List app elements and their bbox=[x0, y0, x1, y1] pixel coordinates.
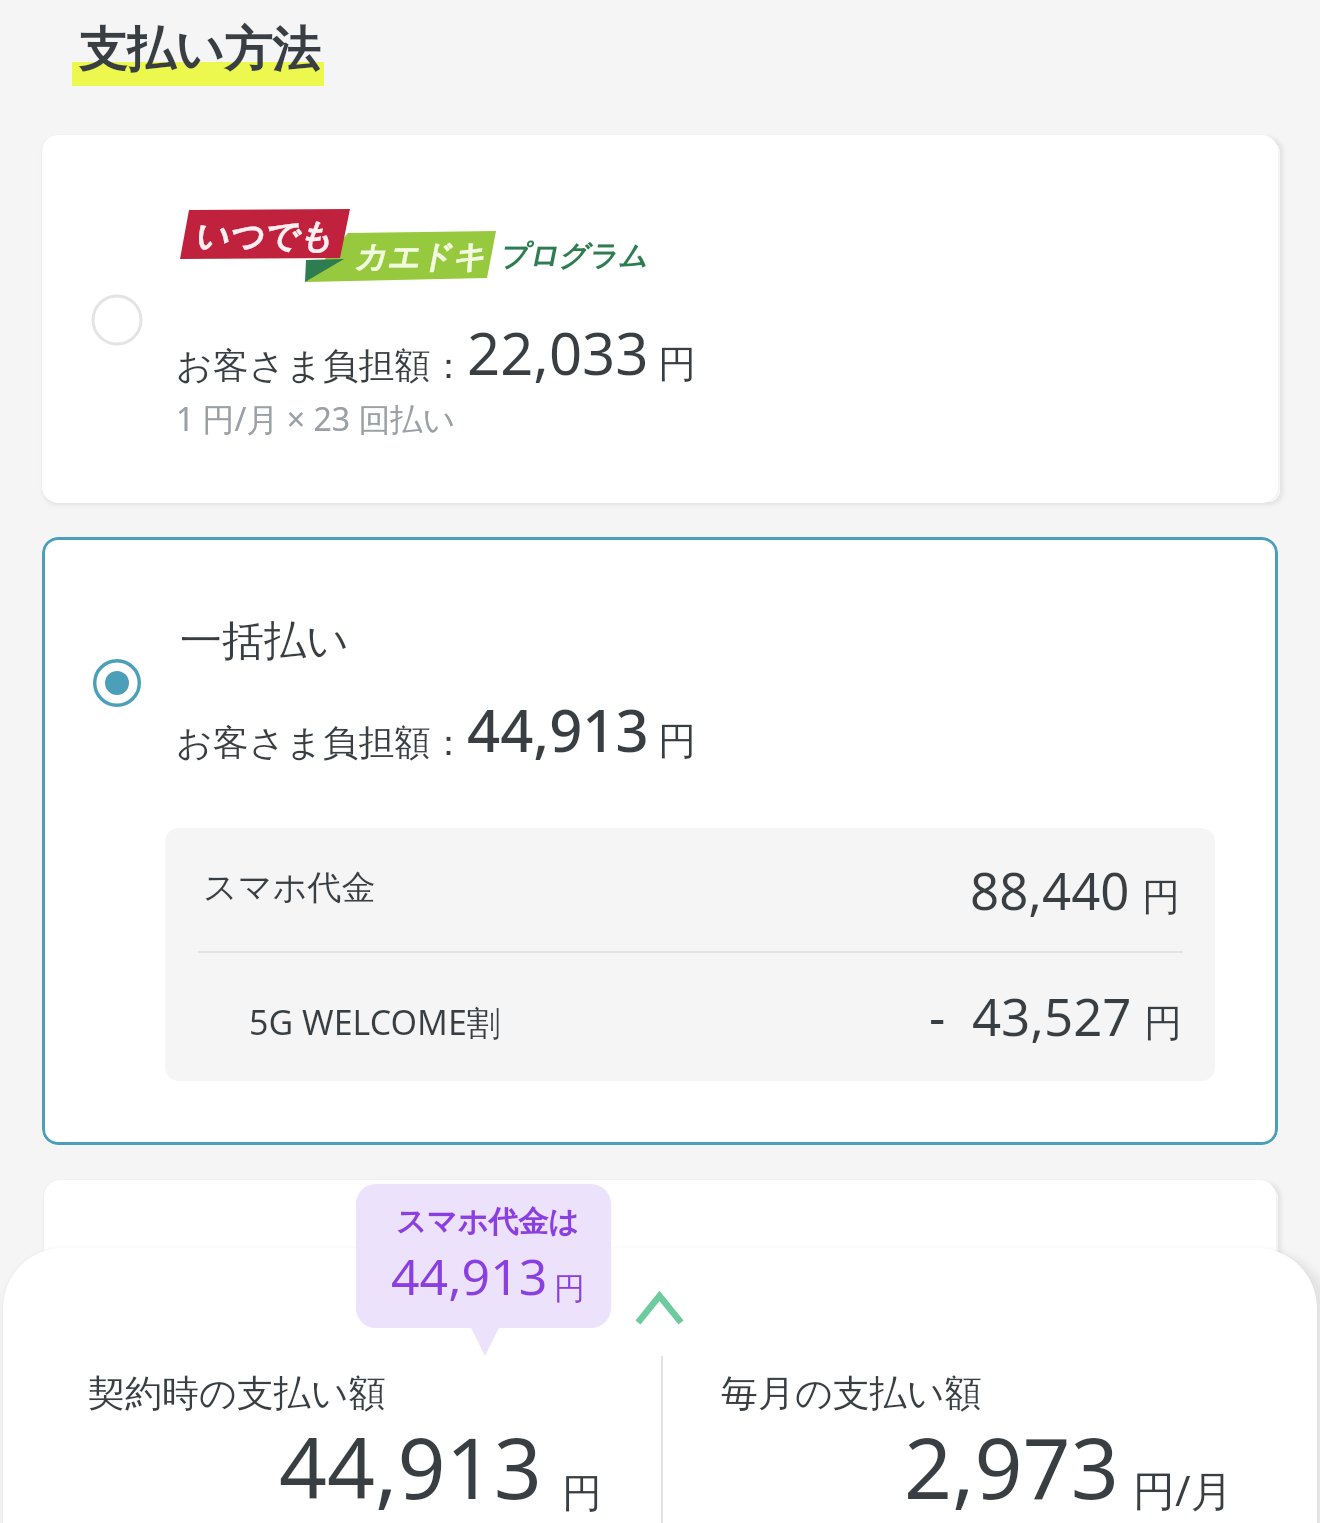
staticText: 22,033 bbox=[467, 313, 649, 392]
staticText: 円 bbox=[1144, 999, 1182, 1047]
staticText: 44,913 bbox=[467, 690, 649, 769]
staticText: カエドキ bbox=[352, 237, 483, 277]
staticText: 44,913 bbox=[279, 1409, 542, 1523]
button[interactable]: Collapse payment summary bbox=[615, 1272, 705, 1352]
staticText: 円 bbox=[554, 1269, 585, 1308]
button[interactable]: いつでも bbox=[42, 135, 1278, 503]
staticText: 2,973 bbox=[904, 1409, 1119, 1523]
staticText: - 43,527 bbox=[929, 981, 1132, 1050]
button[interactable]: 一括払い bbox=[42, 537, 1278, 1145]
staticText: 5G WELCOME割 bbox=[249, 999, 501, 1045]
staticText: お客さま負担額： bbox=[176, 343, 467, 388]
staticText: 円 bbox=[658, 717, 696, 765]
staticText: いつでも bbox=[192, 215, 332, 255]
staticText: 円 bbox=[562, 1468, 602, 1518]
staticText: 88,440 bbox=[970, 855, 1130, 924]
staticText: プログラム bbox=[496, 238, 645, 275]
staticText: スマホ代金は bbox=[396, 1203, 579, 1241]
staticText: 1 円/月 × 23 回払い bbox=[176, 397, 456, 441]
button[interactable] bbox=[44, 1180, 1276, 1380]
staticText: 契約時の支払い額 bbox=[88, 1370, 386, 1417]
staticText: 44,913 bbox=[391, 1242, 548, 1310]
staticText: 円 bbox=[658, 340, 696, 388]
staticText: 一括払い bbox=[180, 615, 349, 668]
staticText: お客さま負担額： bbox=[176, 720, 467, 765]
staticText: 円 bbox=[1142, 873, 1180, 921]
staticText: 毎月の支払い額 bbox=[721, 1370, 982, 1417]
staticText: 支払い方法 bbox=[79, 20, 321, 80]
staticText: 円/月 bbox=[1133, 1461, 1233, 1518]
staticText: スマホ代金 bbox=[203, 866, 376, 909]
